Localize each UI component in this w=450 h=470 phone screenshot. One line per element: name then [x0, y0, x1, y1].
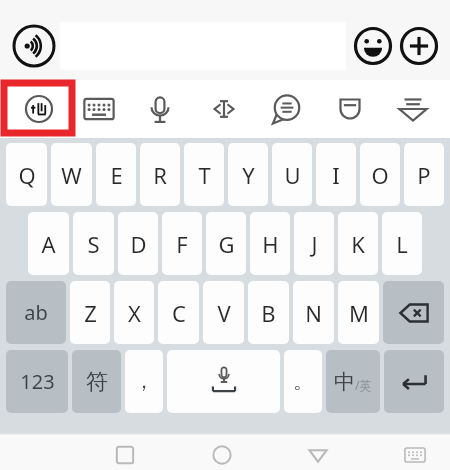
button[interactable]: Collapse: [390, 86, 436, 132]
staticText: 符: [86, 368, 108, 396]
button[interactable]: Recents: [104, 438, 146, 470]
staticText: L: [396, 229, 408, 259]
button[interactable]: Voice: [137, 86, 183, 132]
staticText: /英: [355, 377, 372, 393]
staticText: E: [110, 160, 123, 190]
staticText: Q: [18, 160, 36, 190]
button[interactable]: X: [114, 281, 154, 344]
button[interactable]: U: [272, 143, 312, 206]
button[interactable]: M: [338, 281, 379, 344]
button[interactable]: V: [203, 281, 244, 344]
staticText: Z: [84, 298, 97, 328]
button[interactable]: Language: [326, 350, 380, 413]
staticText: K: [351, 229, 365, 259]
staticText: M: [349, 298, 369, 328]
staticText: N: [305, 298, 322, 328]
staticText: F: [176, 229, 188, 259]
staticText: C: [172, 298, 186, 328]
button[interactable]: Space: [167, 350, 280, 413]
staticText: 中: [334, 369, 355, 395]
staticText: B: [261, 298, 276, 328]
button[interactable]: IME: [16, 86, 62, 132]
button[interactable]: Home: [201, 438, 243, 470]
staticText: ab: [24, 299, 48, 326]
staticText: H: [262, 229, 279, 259]
button[interactable]: 123: [6, 350, 68, 413]
button[interactable]: J: [294, 212, 334, 275]
button[interactable]: O: [360, 143, 400, 206]
staticText: A: [41, 229, 56, 259]
staticText: O: [371, 160, 389, 190]
staticText: P: [417, 160, 431, 190]
button[interactable]: 。: [284, 350, 322, 413]
button[interactable]: Voice input: [11, 23, 57, 69]
staticText: 123: [20, 368, 55, 395]
button[interactable]: K: [338, 212, 378, 275]
button[interactable]: Back: [297, 438, 339, 470]
button[interactable]: T: [184, 143, 224, 206]
button[interactable]: Z: [70, 281, 110, 344]
staticText: 。: [293, 369, 313, 394]
staticText: T: [198, 160, 211, 190]
button[interactable]: Keyboard: [394, 438, 436, 470]
button[interactable]: F: [162, 212, 202, 275]
button[interactable]: Cursor: [201, 86, 247, 132]
staticText: I: [332, 160, 340, 190]
button[interactable]: N: [293, 281, 334, 344]
button[interactable]: Clipboard: [327, 86, 373, 132]
button[interactable]: 符: [72, 350, 121, 413]
staticText: S: [87, 229, 100, 259]
button[interactable]: Chat: [264, 86, 310, 132]
button[interactable]: B: [248, 281, 289, 344]
button[interactable]: R: [140, 143, 180, 206]
button[interactable]: H: [250, 212, 290, 275]
staticText: X: [128, 298, 141, 328]
button[interactable]: Y: [228, 143, 268, 206]
button[interactable]: ，: [125, 350, 163, 413]
button[interactable]: Emoji: [353, 26, 393, 66]
staticText: ，: [134, 369, 154, 394]
button[interactable]: W: [51, 143, 92, 206]
button[interactable]: L: [382, 212, 422, 275]
button[interactable]: P: [404, 143, 444, 206]
staticText: W: [61, 160, 82, 190]
button[interactable]: Q: [6, 143, 47, 206]
button[interactable]: Enter: [384, 350, 444, 413]
staticText: Y: [242, 160, 255, 190]
staticText: V: [217, 298, 231, 328]
button[interactable]: G: [206, 212, 246, 275]
staticText: J: [311, 229, 318, 259]
button[interactable]: Add: [399, 26, 439, 66]
staticText: R: [153, 160, 167, 190]
button[interactable]: C: [158, 281, 199, 344]
button[interactable]: Backspace: [383, 281, 444, 344]
button[interactable]: A: [28, 212, 69, 275]
staticText: G: [218, 229, 235, 259]
staticText: D: [130, 229, 147, 259]
button[interactable]: D: [118, 212, 158, 275]
button[interactable]: Keyboard: [76, 86, 122, 132]
button[interactable]: S: [73, 212, 114, 275]
staticText: U: [284, 160, 301, 190]
button[interactable]: E: [96, 143, 136, 206]
button[interactable]: ab: [6, 281, 66, 344]
button[interactable]: I: [316, 143, 356, 206]
